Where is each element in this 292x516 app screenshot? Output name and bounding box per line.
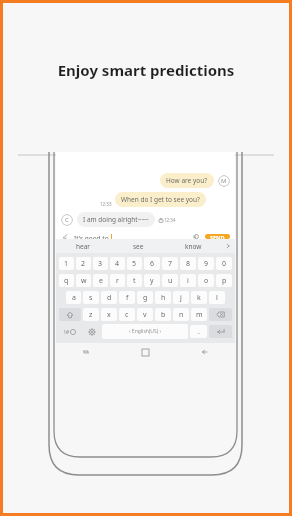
button[interactable]: u	[162, 274, 178, 287]
button[interactable]: j	[173, 291, 189, 304]
staticText: I am doing alright~~~	[83, 215, 149, 224]
button[interactable]: 6	[144, 257, 160, 270]
staticText: o	[204, 276, 209, 286]
staticText: 6	[150, 259, 155, 269]
button[interactable]: 8	[180, 257, 196, 270]
button[interactable]: Shift	[59, 308, 81, 321]
staticText: y	[150, 276, 154, 286]
button[interactable]: q	[59, 274, 74, 287]
staticText: m	[196, 310, 203, 320]
button[interactable]: 3	[93, 257, 108, 270]
staticText: 12:34	[164, 217, 176, 223]
staticText: t	[133, 276, 136, 286]
staticText: When do I get to see you?	[121, 195, 200, 204]
button[interactable]: n	[173, 308, 189, 321]
button[interactable]: know	[166, 239, 221, 253]
button[interactable]: e	[93, 274, 108, 287]
staticText: b	[161, 310, 166, 320]
staticText: 7	[168, 259, 173, 269]
button[interactable]: t	[127, 274, 142, 287]
button[interactable]: 5	[127, 257, 142, 270]
button[interactable]: I am doing alright~~~	[77, 212, 155, 227]
staticText: It's good to	[74, 234, 109, 239]
staticText: .	[198, 327, 200, 337]
staticText: g	[143, 293, 148, 303]
button[interactable]: Symbols	[59, 325, 81, 338]
button[interactable]: a	[66, 291, 81, 304]
button[interactable]: s	[83, 291, 99, 304]
staticText: M	[221, 177, 227, 185]
staticText: Enjoy smart predictions	[3, 60, 289, 80]
button[interactable]: m	[191, 308, 207, 321]
button[interactable]: Emoji	[191, 234, 202, 239]
button[interactable]: b	[155, 308, 171, 321]
button[interactable]: d	[101, 291, 117, 304]
staticText: 4	[115, 259, 120, 269]
button[interactable]: 0	[216, 257, 232, 270]
staticText: 8	[186, 259, 191, 269]
staticText: see	[133, 242, 144, 251]
button[interactable]: Enter	[209, 325, 232, 338]
button[interactable]: 9	[198, 257, 214, 270]
button[interactable]: Home	[115, 343, 175, 361]
button[interactable]: l	[209, 291, 225, 304]
staticText: 9	[204, 259, 209, 269]
button[interactable]: x	[101, 308, 117, 321]
button[interactable]: Back	[175, 343, 235, 361]
button[interactable]: 4	[110, 257, 125, 270]
staticText: h	[161, 293, 166, 303]
button[interactable]: hear	[56, 239, 111, 253]
button[interactable]: f	[119, 291, 135, 304]
button[interactable]: Attach file	[61, 234, 72, 239]
button[interactable]: i	[180, 274, 196, 287]
button[interactable]: Backspace	[209, 308, 232, 321]
button[interactable]: p	[216, 274, 232, 287]
staticText: 3	[98, 259, 103, 269]
staticText: f	[126, 293, 129, 303]
button[interactable]: z	[83, 308, 99, 321]
staticText: i	[187, 276, 189, 286]
staticText: u	[168, 276, 173, 286]
staticText: How are you?	[166, 176, 208, 185]
button[interactable]: SEND	[205, 234, 230, 239]
button[interactable]: o	[198, 274, 214, 287]
staticText: k	[197, 293, 201, 303]
button[interactable]: 7	[162, 257, 178, 270]
button[interactable]: see	[111, 239, 166, 253]
button[interactable]: w	[76, 274, 91, 287]
staticText: j	[180, 293, 182, 303]
staticText: 5	[132, 259, 137, 269]
staticText: hear	[76, 242, 91, 251]
staticText: s	[89, 293, 93, 303]
button[interactable]: ‹ English(US) ›	[102, 324, 188, 339]
button[interactable]: Recents	[56, 343, 115, 361]
button[interactable]: How are you?	[160, 173, 214, 188]
button[interactable]: M	[218, 175, 230, 187]
staticText: a	[72, 293, 76, 303]
button[interactable]: .	[190, 325, 207, 338]
button[interactable]: Settings	[83, 325, 100, 338]
button[interactable]: 1	[59, 257, 74, 270]
staticText: 12:33	[100, 201, 112, 207]
button[interactable]: k	[191, 291, 207, 304]
button[interactable]: More suggestions	[221, 239, 235, 253]
staticText: x	[107, 310, 111, 320]
staticText: 2	[81, 259, 86, 269]
button[interactable]: g	[137, 291, 153, 304]
button[interactable]: h	[155, 291, 171, 304]
staticText: l	[216, 293, 218, 303]
button[interactable]: C	[61, 214, 73, 226]
button[interactable]: v	[137, 308, 153, 321]
staticText: w	[81, 276, 87, 286]
staticText: 0	[222, 259, 227, 269]
staticText: z	[89, 310, 93, 320]
staticText: 1	[64, 259, 69, 269]
button[interactable]: When do I get to see you?	[115, 192, 206, 207]
button[interactable]: c	[119, 308, 135, 321]
staticText: n	[179, 310, 184, 320]
staticText: e	[99, 276, 103, 286]
button[interactable]: 2	[76, 257, 91, 270]
button[interactable]: r	[110, 274, 125, 287]
button[interactable]: y	[144, 274, 160, 287]
staticText: d	[107, 293, 112, 303]
